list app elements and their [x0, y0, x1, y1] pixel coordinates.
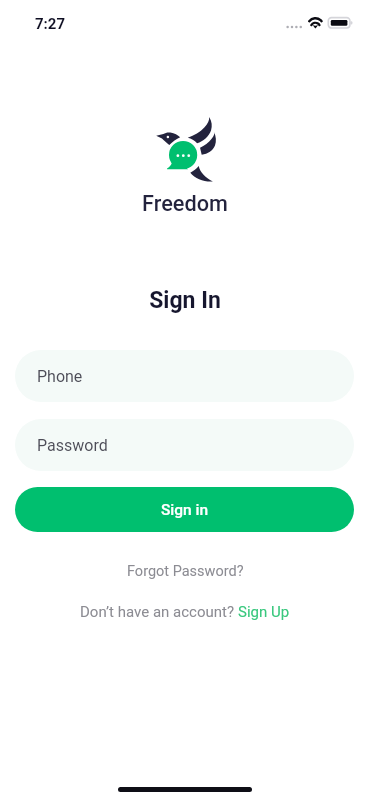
staticText: Forgot Password? — [127, 563, 244, 580]
staticText: Sign in — [161, 501, 209, 519]
other: Status icons — [283, 12, 357, 32]
button[interactable]: Sign in — [15, 487, 354, 532]
button[interactable]: Password — [15, 419, 354, 471]
staticText: Sign In — [149, 287, 221, 314]
staticText: Phone — [37, 367, 83, 386]
staticText: Password — [37, 436, 108, 455]
button[interactable]: Phone — [15, 350, 354, 402]
staticText: Don’t have an account? — [80, 603, 238, 621]
button[interactable]: Sign Up — [238, 603, 290, 621]
staticText: 7:27 — [35, 15, 66, 33]
button[interactable]: Forgot Password? — [115, 558, 256, 585]
staticText: Sign Up — [238, 603, 290, 621]
staticText: Freedom — [142, 191, 228, 216]
